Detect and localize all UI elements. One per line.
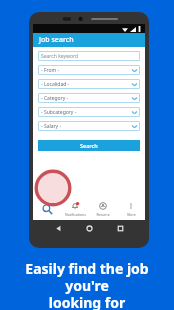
staticText: - Localidad - [41, 81, 70, 88]
button[interactable]: - Localidad - [38, 79, 140, 89]
button[interactable]: Job search [33, 33, 145, 47]
button[interactable]: Recents [114, 222, 126, 234]
staticText: - Salary - [41, 123, 62, 130]
button[interactable]: Back [52, 222, 64, 234]
button[interactable]: - Salary - [38, 121, 140, 131]
button[interactable]: - Category - [38, 93, 140, 103]
button[interactable]: - From - [38, 65, 140, 75]
button[interactable]: Search keyword [38, 51, 140, 61]
staticText: Job search [39, 35, 74, 45]
button[interactable]: More [117, 198, 145, 220]
button[interactable]: Home [83, 222, 95, 234]
button[interactable]: Resume [89, 198, 117, 220]
staticText: Notifications [65, 212, 86, 217]
staticText: - From - [41, 67, 60, 74]
button[interactable]: Notifications [61, 198, 89, 220]
staticText: - Category - [41, 95, 69, 102]
staticText: Search keyword [41, 53, 79, 60]
staticText: Resume [96, 212, 110, 217]
staticText: - Subcategory - [41, 109, 77, 116]
button[interactable]: Search [33, 198, 61, 220]
staticText: More [127, 212, 136, 217]
staticText: Search [80, 142, 98, 149]
staticText: Easily find the job you're looking for [6, 259, 168, 310]
button[interactable]: - Subcategory - [38, 107, 140, 117]
button[interactable]: Search [38, 140, 140, 151]
